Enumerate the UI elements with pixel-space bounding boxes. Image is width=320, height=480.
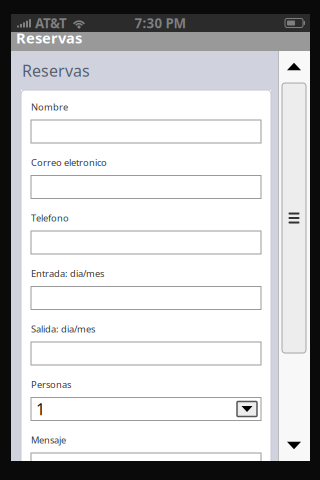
staticText: Personas bbox=[31, 378, 71, 391]
staticText: Nombre bbox=[31, 101, 68, 113]
staticText: Reservas bbox=[16, 28, 82, 47]
staticText: Correo eletronico bbox=[31, 156, 107, 169]
staticText: Telefono bbox=[31, 212, 69, 224]
button[interactable]: Scroll thumb bbox=[282, 83, 306, 353]
staticText: 7:30 PM bbox=[134, 14, 186, 32]
staticText: Mensaje bbox=[31, 434, 66, 446]
button[interactable]: Scroll up bbox=[278, 51, 310, 82]
staticText: Entrada: dia/mes bbox=[31, 267, 104, 280]
button[interactable]: 1 bbox=[31, 397, 261, 420]
staticText: Salida: dia/mes bbox=[31, 323, 95, 335]
staticText: 1 bbox=[36, 398, 45, 420]
staticText: AT&T bbox=[35, 14, 67, 32]
button[interactable]: Scroll down bbox=[278, 430, 310, 461]
staticText: Reservas bbox=[22, 60, 90, 81]
